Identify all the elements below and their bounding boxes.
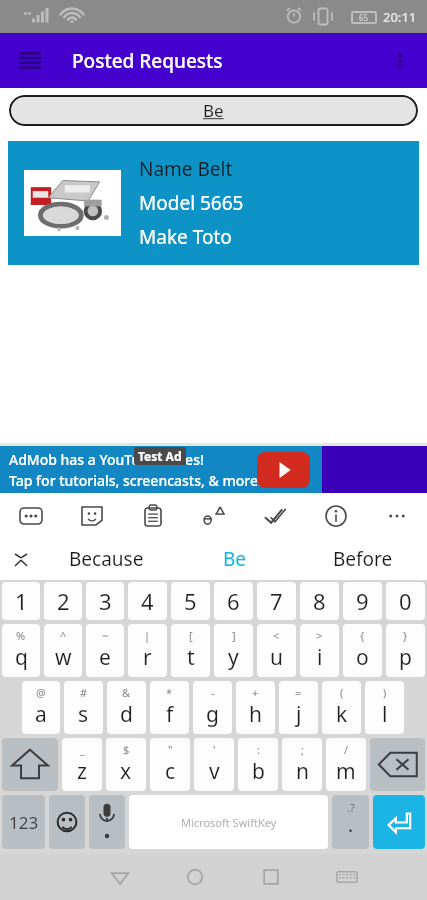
button[interactable]: Before [299,538,427,580]
button[interactable]: More [366,493,427,538]
button[interactable]: 9 [343,582,382,620]
staticText: e [99,643,111,672]
button[interactable]: Clipboard [122,493,183,538]
button[interactable]: | [128,624,167,677]
button[interactable]: 5 [171,582,210,620]
staticText: h [249,700,262,729]
staticText: Make Toto [139,224,232,250]
staticText: } [403,628,408,643]
staticText: = [295,685,302,700]
staticText: f [166,700,174,729]
button[interactable]: + [236,681,275,734]
button[interactable]: @ [22,681,60,734]
staticText: Tap for tutorials, screencasts, & more. [9,471,262,490]
staticText: 1 [15,586,28,616]
staticText: 65 [359,12,369,23]
staticText: > [316,628,323,643]
staticText: a [35,700,47,729]
button[interactable]: } [386,624,425,677]
button[interactable]: $ [106,738,146,791]
staticText: y [228,643,239,672]
button[interactable]: % [2,624,40,677]
staticText: 3 [99,586,112,616]
button[interactable]: - [193,681,232,734]
button[interactable]: 6 [214,582,253,620]
button[interactable]: GIF [0,493,61,538]
button[interactable]: Emoji [49,795,85,849]
staticText: _ [80,742,85,757]
staticText: # [80,685,88,700]
button[interactable]: Name Belt [8,141,419,265]
staticText: AdMob has a YouTube series! [9,450,204,469]
staticText: Microsoft SwiftKey [181,815,277,830]
staticText: w [55,643,72,672]
button[interactable]: Be [9,95,418,126]
button[interactable]: [ [171,624,210,677]
staticText: @ [36,685,46,700]
button[interactable]: > [300,624,339,677]
button[interactable]: ~ [86,624,124,677]
button[interactable]: ^ [44,624,82,677]
button[interactable]: ( [322,681,361,734]
button[interactable]: Shift [2,738,58,791]
staticText: Be [223,546,247,572]
button[interactable]: 8 [300,582,339,620]
button[interactable]: Translate [183,493,244,538]
button[interactable]: ; [282,738,322,791]
button[interactable]: ' [194,738,234,791]
staticText: t [187,643,195,672]
button[interactable]: 7 [257,582,296,620]
button[interactable]: Home [157,854,233,900]
button[interactable]: " [150,738,190,791]
button[interactable]: / [326,738,366,791]
button[interactable]: : [238,738,278,791]
button[interactable]: Enter [373,795,425,849]
button[interactable]: ] [214,624,253,677]
button[interactable]: Period and symbols [332,795,369,849]
button[interactable]: Open navigation drawer [10,41,50,81]
button[interactable]: Because [42,538,171,580]
button[interactable]: 3 [86,582,124,620]
staticText: . [348,812,354,838]
button[interactable]: Info [305,493,366,538]
staticText: ] [232,628,236,643]
button[interactable]: = [279,681,318,734]
button[interactable]: Expand suggestions [0,538,42,580]
button[interactable]: { [343,624,382,677]
button[interactable]: 2 [44,582,82,620]
staticText: 4 [141,586,154,616]
button[interactable]: & [107,681,146,734]
staticText: < [273,628,280,643]
staticText: Be [203,99,224,122]
button[interactable]: 1 [2,582,40,620]
button[interactable]: Be [171,538,299,580]
button[interactable]: # [64,681,103,734]
button[interactable]: Edit [244,493,305,538]
staticText: | [144,628,151,643]
button[interactable]: Back [82,854,157,900]
button[interactable]: < [257,624,296,677]
button[interactable]: 4 [128,582,167,620]
staticText: 123 [9,811,39,834]
button[interactable]: AdMob has a YouTube series! [0,446,427,493]
button[interactable]: _ [62,738,102,791]
staticText: 20:11 [383,8,417,26]
button[interactable]: Stickers [61,493,122,538]
button[interactable]: * [150,681,189,734]
staticText: g [206,700,219,729]
button[interactable]: ) [365,681,404,734]
staticText: Name Belt [139,156,233,182]
button[interactable]: Backspace [370,738,425,791]
staticText: * [166,685,173,700]
staticText: x [120,757,132,786]
button[interactable]: 123 [2,795,45,849]
button[interactable]: 0 [386,582,425,620]
button[interactable]: More options [379,40,421,82]
button[interactable]: Voice input [89,795,125,849]
staticText: b [252,757,265,786]
button[interactable]: Space [129,795,328,849]
button[interactable]: Recents [233,854,309,900]
button[interactable]: Hide keyboard [309,854,385,900]
staticText: ^ [60,628,67,643]
staticText: 6 [227,586,240,616]
